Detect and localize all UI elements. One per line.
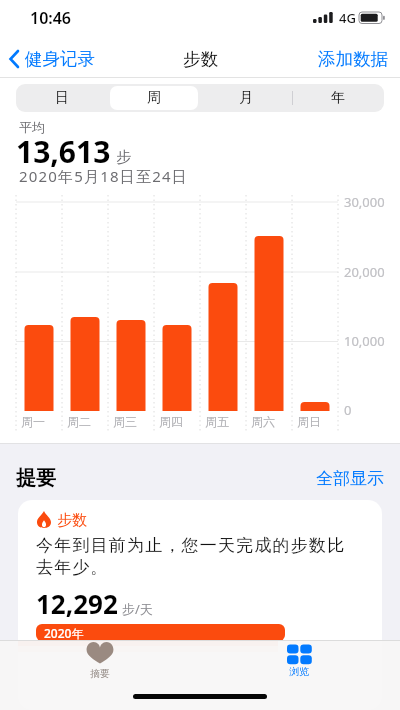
staticText: 步数 [57, 511, 87, 530]
button[interactable]: 全部显示 [316, 468, 384, 489]
staticText: 步 [116, 148, 131, 167]
staticText: 步/天 [122, 600, 153, 618]
staticText: 周六 [251, 414, 275, 429]
staticText: 周四 [159, 414, 183, 429]
staticText: 周五 [205, 414, 229, 429]
button[interactable]: 步数 [18, 500, 382, 710]
staticText: 日 [55, 89, 69, 107]
staticText: 周一 [21, 414, 45, 429]
button[interactable]: 月 [202, 86, 290, 110]
staticText: 添加数据 [318, 48, 388, 70]
staticText: 周三 [113, 414, 137, 429]
staticText: 平均 [19, 119, 45, 135]
button[interactable]: 浏览 [269, 641, 329, 689]
staticText: 全部显示 [316, 468, 384, 489]
button[interactable]: 摘要 [70, 641, 130, 689]
staticText: 周 [147, 89, 161, 107]
staticText: 今年到目前为止，您一天完成的步数比 去年少。 [36, 535, 346, 578]
staticText: 摘要 [90, 667, 110, 680]
staticText: 13,613 [16, 131, 111, 172]
staticText: 20,000 [344, 263, 385, 281]
staticText: 浏览 [289, 665, 309, 678]
staticText: 周二 [67, 414, 91, 429]
staticText: 月 [239, 89, 253, 107]
staticText: 提要 [16, 466, 56, 491]
staticText: 10,000 [344, 332, 385, 350]
staticText: 30,000 [344, 193, 385, 211]
staticText: 健身记录 [25, 48, 95, 70]
staticText: 4G [339, 9, 356, 27]
button[interactable]: 添加数据 [318, 48, 388, 70]
staticText: 10:46 [30, 7, 72, 29]
button[interactable]: 周 [110, 86, 198, 110]
button[interactable]: 健身记录 [0, 48, 95, 70]
staticText: 年 [331, 89, 345, 107]
button[interactable]: 日 [18, 86, 106, 110]
staticText: 0 [344, 401, 352, 419]
staticText: 周日 [297, 414, 321, 429]
staticText: 2020年 [44, 625, 84, 641]
staticText: 12,292 [36, 586, 118, 621]
staticText: 步数 [183, 48, 218, 70]
button[interactable]: 年 [294, 86, 382, 110]
staticText: 2020年5月18日至24日 [19, 166, 189, 186]
